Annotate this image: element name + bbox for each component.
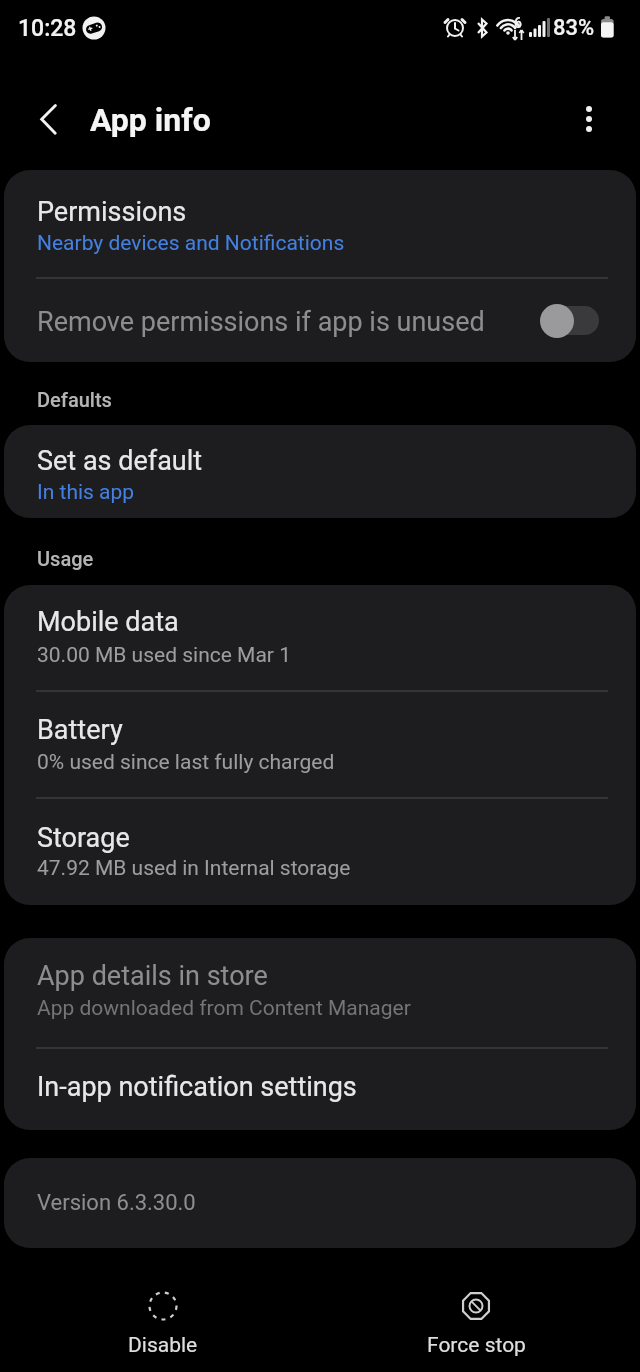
staticText: Force stop [427, 1333, 526, 1358]
staticText: 83% [553, 15, 595, 41]
button[interactable] [565, 94, 615, 146]
staticText: In-app notification settings [37, 1071, 357, 1103]
button[interactable]: App details in store [4, 938, 636, 1047]
button[interactable]: In-app notification settings [4, 1049, 636, 1130]
staticText: Permissions [37, 196, 187, 228]
staticText: Remove permissions if app is unused [37, 306, 485, 338]
staticText: Version 6.3.30.0 [37, 1190, 196, 1216]
button[interactable]: Mobile data [4, 585, 636, 690]
button[interactable]: Battery [4, 692, 636, 797]
staticText: Set as default [37, 445, 203, 477]
button[interactable]: Disable [83, 1272, 243, 1367]
staticText: 30.00 MB used since Mar 1 [37, 643, 291, 668]
staticText: 6 [514, 15, 522, 31]
button[interactable] [24, 94, 76, 146]
staticText: App details in store [37, 960, 268, 992]
staticText: 0% used since last fully charged [37, 750, 335, 775]
staticText: In this app [37, 480, 135, 505]
staticText: App downloaded from Content Manager [37, 996, 411, 1021]
staticText: App info [90, 101, 211, 139]
staticText: Nearby devices and Notifications [37, 231, 345, 256]
staticText: 10:28 [18, 15, 77, 42]
button[interactable]: Permissions [4, 170, 636, 277]
button[interactable]: Remove permissions if app is unused [4, 279, 636, 362]
staticText: Storage [37, 822, 130, 854]
staticText: Defaults [37, 388, 112, 411]
staticText: 47.92 MB used in Internal storage [37, 856, 351, 881]
staticText: Usage [37, 547, 94, 570]
button[interactable]: Force stop [396, 1272, 556, 1367]
button[interactable]: Storage [4, 799, 636, 905]
button[interactable]: Set as default [4, 425, 636, 518]
staticText: Disable [128, 1333, 198, 1358]
staticText: Battery [37, 714, 123, 746]
staticText: Mobile data [37, 606, 179, 638]
